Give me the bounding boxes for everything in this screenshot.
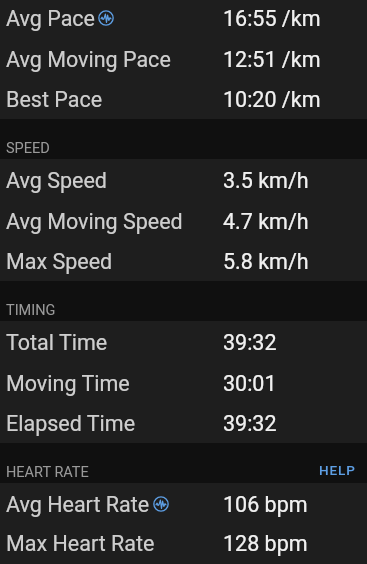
staticText: Elapsed Time [6,411,136,436]
button[interactable]: Avg Pace [0,0,367,38]
staticText: Avg Moving Pace [6,47,171,72]
staticText: TIMING [6,302,56,319]
button[interactable]: Max Heart Rate [0,524,367,561]
button[interactable]: Moving Time [0,362,367,402]
staticText: HELP [319,462,356,478]
staticText: 16:55 /km [223,6,321,31]
staticText: 5.8 km/h [223,249,309,274]
button[interactable]: Avg Moving Speed [0,200,367,240]
button[interactable]: About this metric [153,496,169,512]
button[interactable]: About this metric [98,10,114,26]
button[interactable]: Total Time [0,321,367,362]
staticText: Avg Heart Rate [6,492,150,517]
button[interactable]: Avg Speed [0,159,367,200]
staticText: Best Pace [6,87,103,112]
staticText: Max Speed [6,249,113,274]
staticText: 106 bpm [223,492,308,517]
staticText: Max Heart Rate [6,531,155,556]
staticText: Avg Pace [6,6,95,31]
staticText: 12:51 /km [223,47,321,72]
button[interactable]: Best Pace [0,78,367,119]
button[interactable]: HELP [305,456,367,483]
staticText: 128 bpm [223,531,308,556]
button[interactable]: Avg Moving Pace [0,38,367,78]
staticText: HEART RATE [6,464,89,481]
staticText: 3.5 km/h [223,168,309,193]
staticText: 4.7 km/h [223,209,309,234]
staticText: Moving Time [6,371,130,396]
staticText: Avg Moving Speed [6,209,183,234]
button[interactable]: Max Speed [0,240,367,281]
staticText: SPEED [6,140,50,157]
staticText: Avg Speed [6,168,107,193]
staticText: 39:32 [223,330,277,355]
staticText: 39:32 [223,411,277,436]
staticText: 30:01 [223,371,277,396]
button[interactable]: Avg Heart Rate [0,483,367,524]
button[interactable]: Elapsed Time [0,402,367,443]
staticText: 10:20 /km [223,87,321,112]
staticText: Total Time [6,330,108,355]
